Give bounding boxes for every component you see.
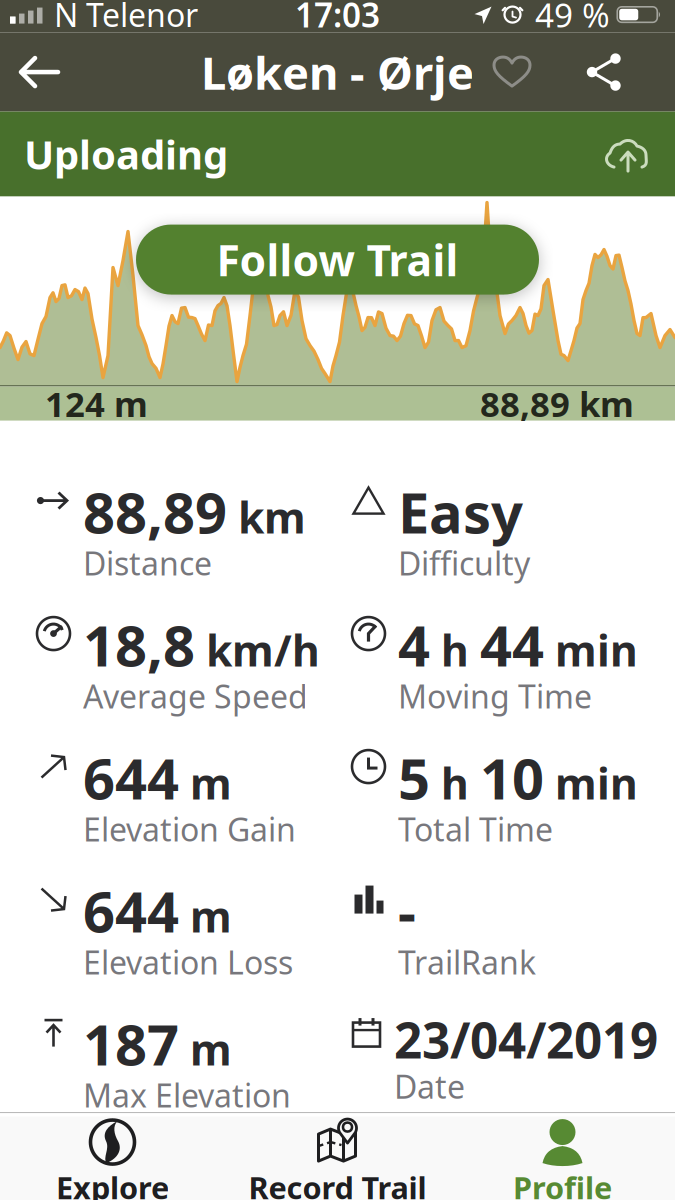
staticText: 49 %	[535, 0, 610, 37]
staticText: Uploading	[24, 127, 228, 181]
staticText: 23/04/2019	[394, 1007, 658, 1072]
staticText: 17:03	[295, 0, 380, 37]
staticText: Explore	[56, 1167, 169, 1200]
staticText: TrailRank	[398, 941, 536, 983]
staticText: 18,8 km/h	[83, 608, 320, 682]
staticText: Date	[394, 1065, 465, 1108]
staticText: Max Elevation	[83, 1074, 291, 1116]
staticText: Elevation Gain	[83, 808, 296, 850]
staticText: Difficulty	[398, 542, 530, 584]
staticText: Elevation Loss	[83, 941, 293, 983]
button[interactable]: Upload	[603, 135, 653, 173]
staticText: N Telenor	[54, 0, 198, 36]
staticText: Follow Trail	[216, 231, 458, 288]
staticText: Løken - Ørje	[201, 42, 474, 102]
staticText: 88,89 km	[480, 381, 634, 427]
button[interactable]: Follow Trail	[136, 225, 539, 295]
staticText: Record Trail	[248, 1167, 426, 1200]
staticText: 644 m	[83, 741, 232, 815]
staticText: 88,89 km	[83, 475, 306, 549]
button[interactable]: Share	[532, 34, 675, 110]
staticText: -	[398, 874, 416, 948]
staticText: 4 h 44 min	[398, 608, 638, 682]
button[interactable]: Favorite	[492, 34, 532, 110]
staticText: 124 m	[45, 381, 148, 427]
button[interactable]: Back	[0, 33, 60, 111]
staticText: Profile	[513, 1167, 612, 1200]
staticText: Average Speed	[83, 675, 308, 717]
staticText: Distance	[83, 542, 212, 584]
staticText: Moving Time	[398, 675, 592, 717]
staticText: 5 h 10 min	[398, 741, 638, 815]
button[interactable]: Profile	[450, 1113, 675, 1200]
staticText: Easy	[398, 475, 523, 549]
staticText: Total Time	[398, 808, 553, 850]
staticText: 187 m	[83, 1007, 232, 1081]
button[interactable]: Record Trail	[225, 1113, 450, 1200]
staticText: 644 m	[83, 874, 232, 948]
button[interactable]: Explore	[0, 1113, 225, 1200]
